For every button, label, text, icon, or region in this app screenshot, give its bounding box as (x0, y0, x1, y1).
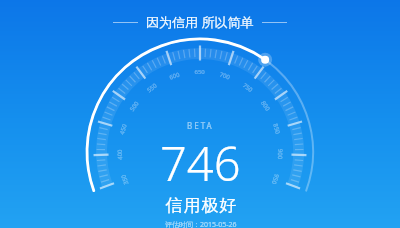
staticText: BETA (187, 120, 214, 131)
other: Credit score gauge 746 (0, 0, 400, 228)
button[interactable]: BETA (160, 120, 241, 228)
button[interactable]: 因为信用 所以简单 (113, 13, 287, 31)
staticText: 746 (160, 131, 241, 195)
staticText: 信用极好 (165, 195, 237, 216)
staticText: 评估时间：2015-05-26 (165, 220, 237, 228)
staticText: 因为信用 所以简单 (146, 13, 254, 31)
